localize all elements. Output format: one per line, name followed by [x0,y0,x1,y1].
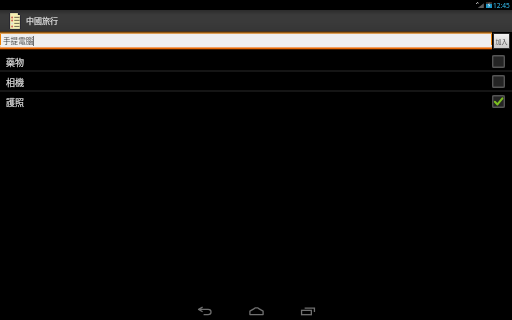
staticText: 12:45 [493,1,510,10]
button[interactable]: 手提電腦 [1,34,491,47]
button[interactable]: 加入 [494,34,509,48]
staticText: 手提電腦 [3,35,34,46]
button[interactable]: Back [178,294,231,320]
button[interactable]: Recent apps [282,294,333,320]
staticText: 中國旅行 [26,15,58,27]
staticText: 相機 [6,76,25,89]
button[interactable]: 護照 [0,90,512,110]
button[interactable]: 藥物 [0,50,512,70]
button[interactable]: Home [231,294,282,320]
button[interactable]: 相機 [0,70,512,90]
staticText: 護照 [6,96,25,109]
staticText: 加入 [495,37,508,46]
staticText: 藥物 [6,56,25,69]
